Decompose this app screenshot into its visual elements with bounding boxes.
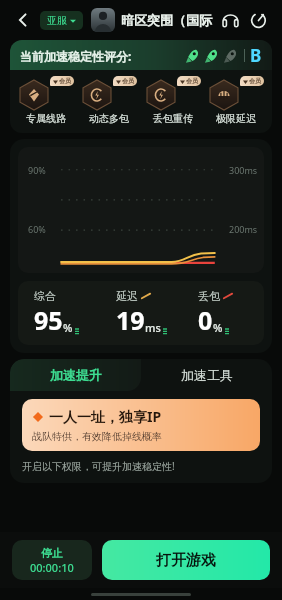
button[interactable]: 会员: [208, 76, 264, 125]
staticText: 300ms: [229, 164, 258, 176]
button[interactable]: 会员: [145, 76, 201, 125]
staticText: 打开游戏: [156, 551, 216, 570]
staticText: 一人一址，独享IP: [49, 407, 162, 426]
staticText: 极限延迟: [216, 112, 256, 125]
staticText: 0: [198, 303, 213, 337]
staticText: 200ms: [229, 223, 258, 235]
staticText: 暗区突围（国际: [121, 12, 216, 28]
staticText: 会员: [186, 77, 198, 85]
staticText: 当前加速稳定性评分:: [20, 48, 132, 64]
button[interactable]: 加速提升: [10, 359, 141, 391]
staticText: B: [250, 44, 262, 67]
staticText: 60%: [28, 223, 46, 235]
staticText: 90%: [28, 164, 46, 176]
staticText: 亚服: [47, 14, 67, 27]
staticText: 延迟: [116, 289, 138, 303]
staticText: 动态多包: [89, 112, 129, 125]
button[interactable]: 会员: [81, 76, 137, 125]
staticText: 开启以下权限，可提升加速稳定性!: [22, 459, 175, 473]
button[interactable]: 一人一址，独享IP: [22, 399, 260, 451]
staticText: ms: [145, 320, 161, 335]
staticText: %: [213, 320, 223, 335]
button[interactable]: 打开游戏: [102, 540, 270, 580]
staticText: 会员: [249, 77, 261, 85]
button[interactable]: 停止: [12, 540, 92, 580]
staticText: 00:00:10: [30, 560, 74, 575]
staticText: %: [63, 320, 73, 335]
button[interactable]: Refresh: [244, 6, 272, 34]
button[interactable]: Support: [216, 6, 244, 34]
button[interactable]: 亚服: [40, 11, 83, 30]
staticText: 丢包重传: [153, 112, 193, 125]
button[interactable]: Back: [10, 7, 36, 33]
staticText: 19: [116, 303, 145, 337]
staticText: 专属线路: [26, 112, 66, 125]
button[interactable]: 会员: [18, 76, 74, 125]
staticText: 会员: [122, 77, 134, 85]
staticText: 95: [34, 303, 63, 337]
staticText: 丢包: [198, 289, 220, 303]
staticText: 加速工具: [181, 367, 233, 383]
staticText: 停止: [41, 546, 63, 560]
staticText: 综合: [34, 289, 56, 303]
button[interactable]: 加速工具: [141, 359, 272, 391]
staticText: 加速提升: [50, 367, 102, 383]
staticText: 战队特供，有效降低掉线概率: [32, 430, 162, 443]
staticText: 会员: [59, 77, 71, 85]
